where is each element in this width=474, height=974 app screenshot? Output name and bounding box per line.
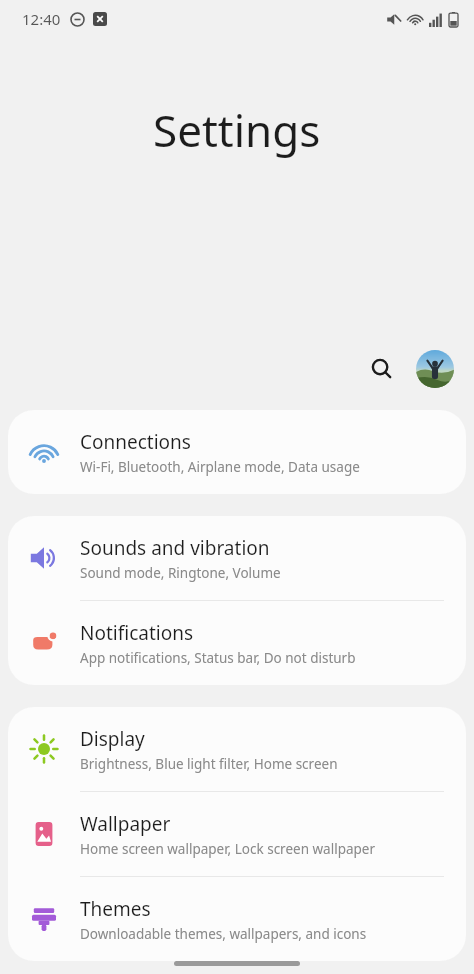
staticText: Sounds and vibration: [80, 535, 270, 561]
staticText: Downloadable themes, wallpapers, and ico…: [80, 925, 367, 943]
button[interactable]: Connections: [8, 410, 466, 494]
button[interactable]: Sounds and vibration: [8, 516, 466, 600]
staticText: Brightness, Blue light filter, Home scre…: [80, 755, 338, 773]
button[interactable]: Profile: [416, 350, 454, 388]
staticText: Display: [80, 726, 145, 752]
staticText: Wallpaper: [80, 811, 171, 837]
staticText: Sound mode, Ringtone, Volume: [80, 564, 281, 582]
button[interactable]: Notifications: [8, 601, 466, 685]
button[interactable]: Themes: [8, 877, 466, 961]
staticText: Home screen wallpaper, Lock screen wallp…: [80, 840, 376, 858]
staticText: Wi-Fi, Bluetooth, Airplane mode, Data us…: [80, 458, 360, 476]
staticText: Themes: [80, 896, 151, 922]
button[interactable]: Wallpaper: [8, 792, 466, 876]
staticText: App notifications, Status bar, Do not di…: [80, 649, 356, 667]
staticText: Connections: [80, 429, 191, 455]
staticText: 12:40: [22, 9, 61, 29]
staticText: Notifications: [80, 620, 194, 646]
button[interactable]: Search: [360, 347, 404, 391]
button[interactable]: Display: [8, 707, 466, 791]
staticText: Settings: [153, 100, 321, 160]
